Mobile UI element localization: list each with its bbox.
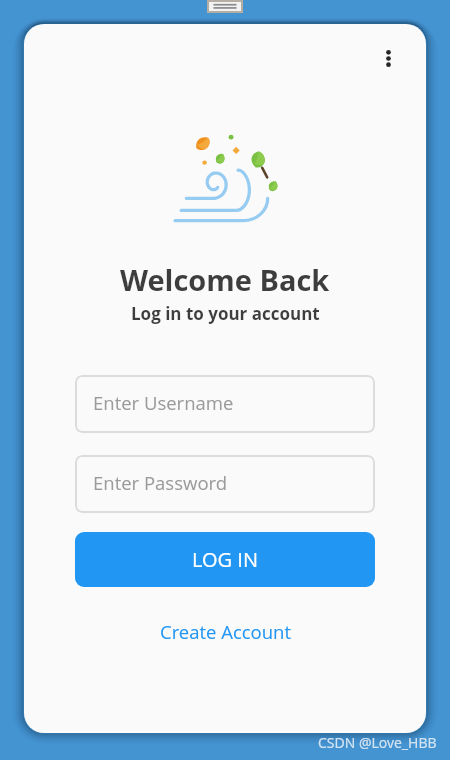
button[interactable]: Enter Password (75, 455, 375, 513)
staticText: Log in to your account (131, 302, 320, 325)
staticText: Enter Password (93, 470, 228, 495)
button[interactable]: More options (364, 34, 412, 82)
button[interactable]: Create Account (144, 614, 306, 648)
staticText: Welcome Back (120, 260, 330, 299)
staticText: LOG IN (192, 546, 258, 573)
staticText: Create Account (160, 619, 291, 644)
button[interactable]: Enter Username (75, 375, 375, 433)
button[interactable]: LOG IN (75, 532, 375, 587)
staticText: CSDN @Love_HBB (318, 733, 437, 752)
staticText: Enter Username (93, 390, 234, 415)
